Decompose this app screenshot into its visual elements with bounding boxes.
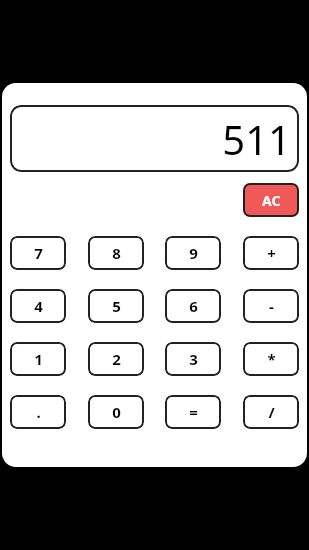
button[interactable]: 1: [10, 342, 66, 376]
staticText: 7: [34, 243, 43, 263]
staticText: 8: [112, 243, 121, 263]
staticText: 3: [189, 349, 198, 369]
staticText: .: [36, 402, 41, 422]
button[interactable]: 3: [165, 342, 221, 376]
button[interactable]: 5: [88, 289, 144, 323]
staticText: +: [267, 243, 276, 263]
button[interactable]: 0: [88, 395, 144, 429]
staticText: *: [267, 349, 276, 369]
button[interactable]: =: [165, 395, 221, 429]
staticText: AC: [262, 191, 281, 210]
button[interactable]: *: [243, 342, 299, 376]
staticText: 511: [222, 112, 291, 166]
staticText: -: [269, 296, 274, 316]
button[interactable]: +: [243, 236, 299, 270]
staticText: =: [189, 402, 198, 422]
button[interactable]: 8: [88, 236, 144, 270]
button[interactable]: 4: [10, 289, 66, 323]
button[interactable]: -: [243, 289, 299, 323]
staticText: 1: [34, 349, 43, 369]
staticText: 5: [112, 296, 121, 316]
button[interactable]: 2: [88, 342, 144, 376]
staticText: 0: [112, 402, 121, 422]
staticText: /: [268, 402, 275, 422]
staticText: 4: [34, 296, 43, 316]
button[interactable]: AC: [243, 183, 299, 217]
button[interactable]: 7: [10, 236, 66, 270]
staticText: 2: [112, 349, 121, 369]
button[interactable]: .: [10, 395, 66, 429]
button[interactable]: 6: [165, 289, 221, 323]
staticText: 9: [189, 243, 198, 263]
button[interactable]: /: [243, 395, 299, 429]
staticText: 6: [189, 296, 198, 316]
button[interactable]: 9: [165, 236, 221, 270]
